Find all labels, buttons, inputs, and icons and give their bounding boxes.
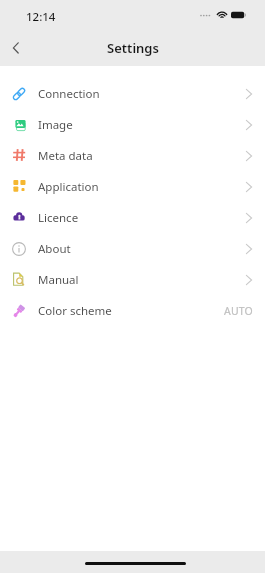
staticText: Application xyxy=(38,179,99,195)
staticText: Settings xyxy=(107,39,159,57)
staticText: Licence xyxy=(38,210,79,226)
staticText: About xyxy=(38,241,71,257)
button[interactable]: Color scheme xyxy=(0,295,265,326)
staticText: Connection xyxy=(38,86,100,102)
staticText: Meta data xyxy=(38,148,93,164)
button[interactable]: Image xyxy=(0,109,265,140)
button[interactable]: Licence xyxy=(0,202,265,233)
staticText: Color scheme xyxy=(38,303,112,319)
button[interactable]: Meta data xyxy=(0,140,265,171)
button[interactable]: About xyxy=(0,233,265,264)
staticText: Manual xyxy=(38,272,79,288)
button[interactable]: Manual xyxy=(0,264,265,295)
button[interactable]: Connection xyxy=(0,78,265,109)
button[interactable]: Application xyxy=(0,171,265,202)
staticText: AUTO xyxy=(224,304,254,318)
button[interactable]: Back xyxy=(0,30,36,66)
staticText: 12:14 xyxy=(26,9,56,25)
staticText: Image xyxy=(38,117,73,133)
